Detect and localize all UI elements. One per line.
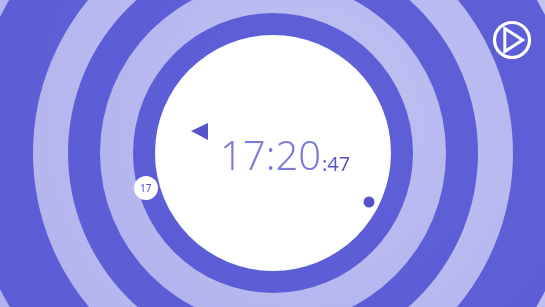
staticText: :47 <box>322 150 351 177</box>
staticText: 17:20 <box>220 127 322 181</box>
staticText: 17 <box>140 181 152 195</box>
button[interactable]: Day 17 <box>134 176 158 200</box>
button[interactable]: Play <box>492 20 532 60</box>
